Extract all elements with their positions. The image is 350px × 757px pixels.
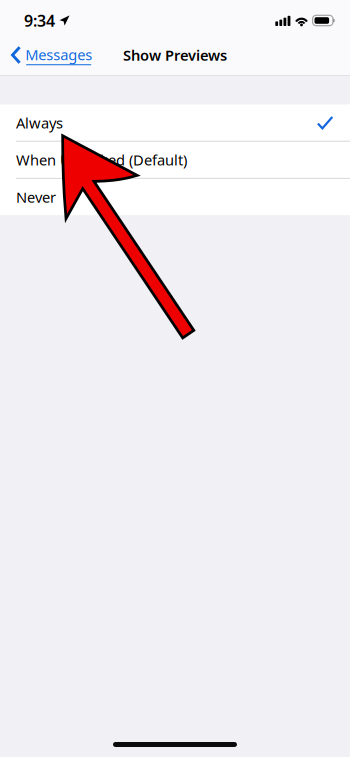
staticText: Always xyxy=(16,113,63,132)
staticText: Show Previews xyxy=(123,45,227,65)
button[interactable]: When Unlocked (Default) xyxy=(0,142,350,178)
staticText: Never xyxy=(16,187,56,207)
staticText: When Unlocked (Default) xyxy=(16,150,187,170)
button[interactable]: Never xyxy=(0,179,350,215)
button[interactable]: Always xyxy=(0,105,350,141)
staticText: 9:34 xyxy=(24,10,55,31)
staticText: Messages xyxy=(25,45,92,64)
button[interactable]: Messages xyxy=(0,41,92,69)
